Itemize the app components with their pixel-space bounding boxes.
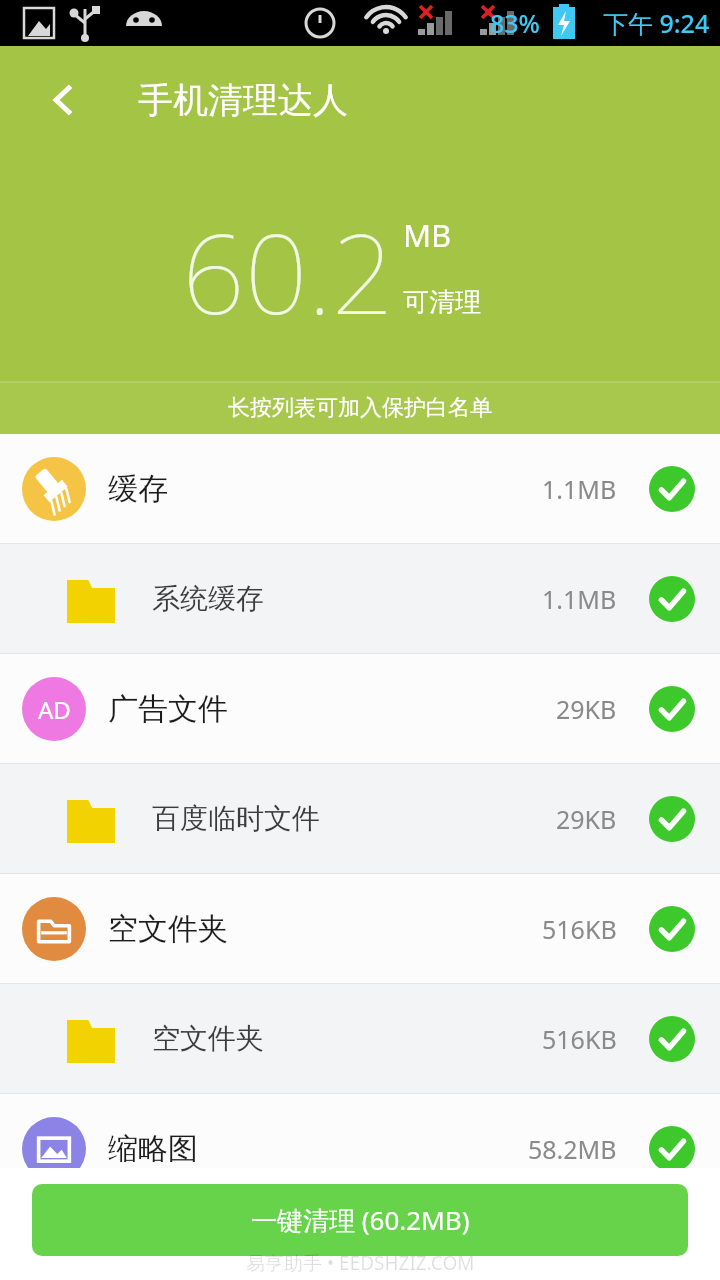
button[interactable]: Selected — [649, 576, 695, 622]
button[interactable]: 空文件夹 — [0, 984, 720, 1093]
button[interactable]: Selected — [649, 1016, 695, 1062]
staticText: 29KB — [556, 802, 617, 836]
button[interactable]: 缩略图 — [0, 1094, 720, 1203]
staticText: AD — [38, 693, 71, 726]
button[interactable]: Selected — [649, 466, 695, 512]
button[interactable]: 系统缓存 — [0, 544, 720, 653]
staticText: 易亨助手 • EEDSHZIZ.COM — [246, 1250, 475, 1276]
staticText: 60.2 — [182, 196, 395, 346]
staticText: 下午 9:24 — [603, 6, 710, 40]
staticText: 516KB — [542, 912, 617, 946]
staticText: 83% — [490, 6, 540, 40]
staticText: 1.1MB — [542, 582, 617, 616]
staticText: 58.2MB — [528, 1132, 617, 1166]
staticText: 29KB — [556, 692, 617, 726]
button[interactable]: Selected — [649, 686, 695, 732]
staticText: 516KB — [542, 1022, 617, 1056]
staticText: 空文件夹 — [152, 1021, 264, 1056]
staticText: 缩略图 — [108, 1130, 198, 1168]
staticText: 空文件夹 — [108, 910, 228, 948]
staticText: 百度临时文件 — [152, 801, 320, 836]
button[interactable]: 空文件夹 — [0, 874, 720, 983]
button[interactable]: Back — [30, 66, 98, 134]
staticText: 系统缓存 — [152, 581, 264, 616]
button[interactable]: Selected — [649, 796, 695, 842]
staticText: 广告文件 — [108, 690, 228, 728]
staticText: 可清理 — [403, 286, 481, 319]
button[interactable]: 百度临时文件 — [0, 764, 720, 873]
button[interactable]: AD — [0, 654, 720, 763]
button[interactable]: 缓存 — [0, 434, 720, 543]
staticText: 长按列表可加入保护白名单 — [228, 394, 492, 422]
button[interactable]: Selected — [649, 906, 695, 952]
button[interactable]: 一键清理 (60.2MB) — [32, 1184, 688, 1256]
staticText: 缓存 — [108, 470, 168, 508]
button[interactable]: Selected — [649, 1126, 695, 1172]
staticText: 手机清理达人 — [138, 78, 348, 122]
staticText: 一键清理 (60.2MB) — [251, 1202, 470, 1238]
staticText: MB — [403, 214, 452, 256]
staticText: 1.1MB — [542, 472, 617, 506]
